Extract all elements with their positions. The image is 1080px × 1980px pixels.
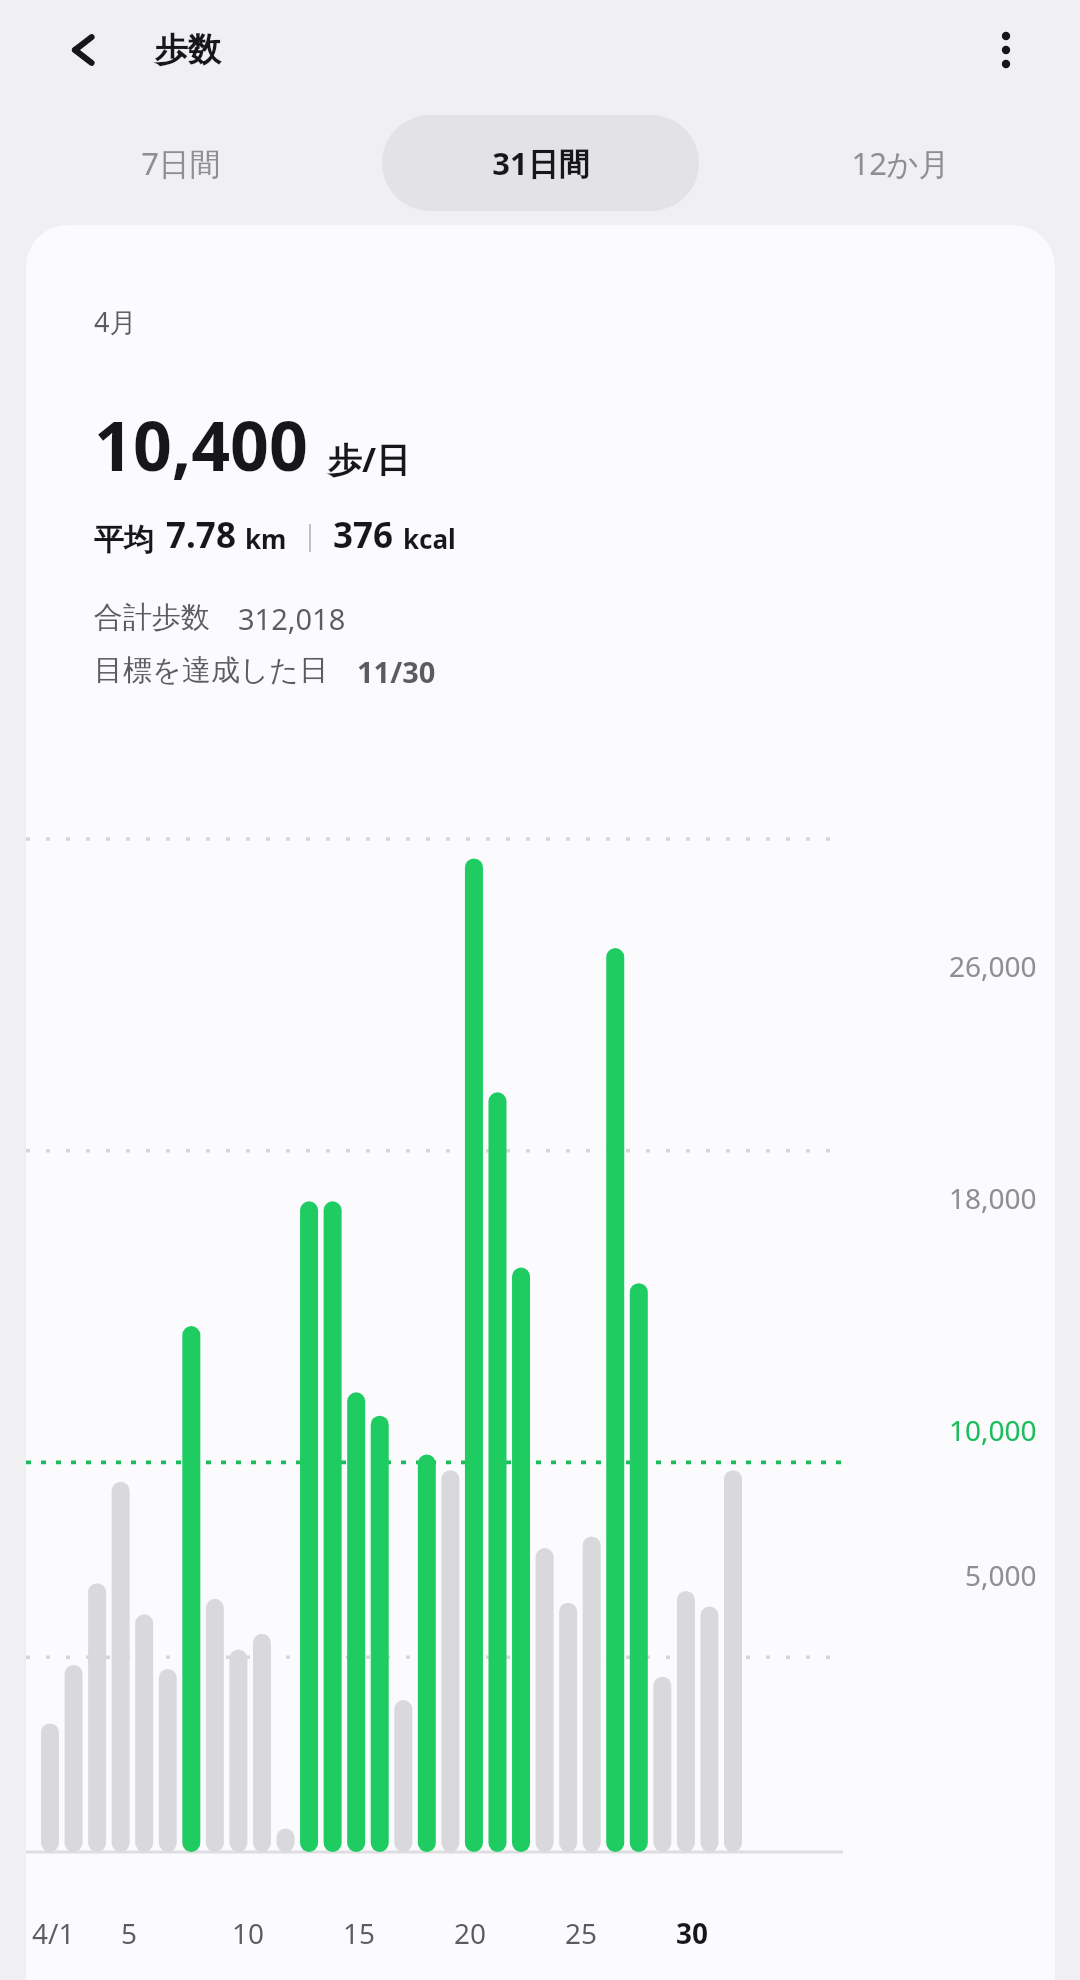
staticText: 12か月 [851, 142, 950, 184]
staticText: 4月 [94, 303, 137, 340]
button[interactable]: 31日間 [382, 115, 699, 211]
button[interactable]: 7日間 [22, 115, 339, 211]
staticText: 5 [121, 1914, 138, 1952]
staticText: 26,000 [949, 947, 1037, 985]
staticText: 25 [565, 1914, 598, 1952]
staticText: 平均 [94, 521, 154, 559]
staticText: 7.78 [166, 511, 236, 559]
staticText: 4/1 [32, 1914, 75, 1952]
staticText: 31日間 [492, 142, 590, 184]
staticText: 30 [676, 1914, 709, 1952]
staticText: kcal [403, 521, 456, 556]
staticText: 5,000 [965, 1556, 1037, 1594]
button[interactable]: More options [974, 18, 1038, 82]
staticText: 20 [454, 1914, 487, 1952]
staticText: km [245, 521, 287, 556]
staticText: 15 [343, 1914, 376, 1952]
staticText: 10 [232, 1914, 265, 1952]
staticText: 目標を達成した日 [94, 652, 329, 689]
staticText: 312,018 [238, 599, 346, 638]
button[interactable]: 12か月 [742, 115, 1059, 211]
staticText: 歩数 [155, 29, 221, 71]
staticText: 合計歩数 [94, 599, 210, 636]
staticText: 18,000 [949, 1179, 1037, 1217]
staticText: 10,400 [94, 398, 308, 491]
staticText: 11/30 [357, 652, 436, 691]
staticText: 歩/日 [328, 436, 411, 482]
button[interactable]: Back [50, 18, 114, 82]
staticText: 10,000 [949, 1411, 1037, 1449]
staticText: 7日間 [141, 142, 221, 184]
staticText: 376 [333, 511, 394, 559]
